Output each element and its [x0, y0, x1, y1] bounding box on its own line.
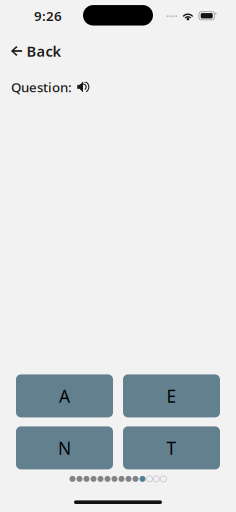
button[interactable]: N — [16, 426, 113, 469]
button[interactable]: Play question audio — [76, 80, 91, 94]
staticText: N — [58, 436, 71, 459]
button[interactable]: Back — [0, 39, 69, 63]
staticText: A — [59, 384, 70, 407]
button[interactable]: T — [123, 426, 220, 469]
staticText: 9:26 — [34, 7, 62, 25]
staticText: Back — [26, 41, 61, 61]
button[interactable]: E — [123, 374, 220, 417]
staticText: E — [166, 384, 176, 407]
button[interactable]: A — [16, 374, 113, 417]
staticText: T — [166, 436, 176, 459]
staticText: Question: — [11, 78, 72, 96]
